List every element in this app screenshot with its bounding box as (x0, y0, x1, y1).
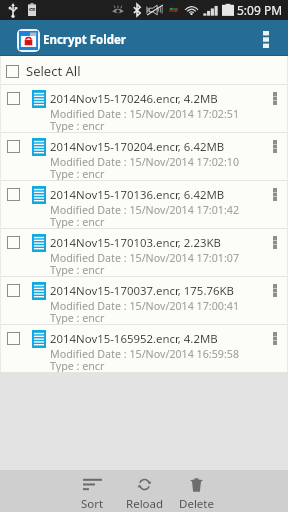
staticText: 2014Nov15-170103.encr, 2.23KB (50, 235, 221, 251)
staticText: 2014Nov15-170246.encr, 4.2MB (50, 91, 218, 107)
button[interactable]: Item options (256, 133, 288, 180)
staticText: Reload (126, 496, 164, 512)
staticText: Type : encr (50, 359, 105, 374)
staticText: 2014Nov15-170037.encr, 175.76KB (50, 283, 234, 299)
button[interactable]: 2014Nov15-170103.encr, 2.23KB (0, 229, 288, 276)
button[interactable]: Item options (256, 277, 288, 324)
button[interactable]: 2014Nov15-170037.encr, 175.76KB (0, 277, 288, 324)
staticText: Type : encr (50, 119, 105, 134)
staticText: 2014Nov15-165952.encr, 4.2MB (50, 331, 218, 347)
staticText: Type : encr (50, 167, 105, 182)
staticText: 2014Nov15-170204.encr, 6.42MB (50, 139, 225, 155)
button[interactable]: 2014Nov15-170204.encr, 6.42MB (0, 133, 288, 180)
button[interactable]: Reload (119, 470, 170, 512)
staticText: Modified Date : 15/Nov/2014 17:00:41 (50, 299, 240, 314)
button[interactable]: Item options (256, 325, 288, 372)
staticText: Modified Date : 15/Nov/2014 16:59:58 (50, 347, 240, 362)
button[interactable]: Select All (0, 56, 288, 84)
button[interactable]: Delete (171, 470, 222, 512)
button[interactable]: Item options (256, 85, 288, 132)
staticText: Type : encr (50, 311, 105, 326)
staticText: 2014Nov15-170136.encr, 6.42MB (50, 187, 225, 203)
staticText: Modified Date : 15/Nov/2014 17:02:10 (50, 155, 240, 170)
button[interactable]: Sort (67, 470, 118, 512)
button[interactable]: 2014Nov15-170136.encr, 6.42MB (0, 181, 288, 228)
staticText: 5:09 PM (237, 2, 283, 18)
staticText: Type : encr (50, 263, 105, 278)
staticText: Sort (81, 496, 104, 512)
staticText: Select All (26, 62, 81, 80)
staticText: Encrypt Folder (43, 32, 127, 48)
button[interactable]: Item options (256, 229, 288, 276)
staticText: Modified Date : 15/Nov/2014 17:01:07 (50, 251, 240, 266)
staticText: Delete (179, 496, 214, 512)
button[interactable]: 2014Nov15-170246.encr, 4.2MB (0, 85, 288, 132)
staticText: Modified Date : 15/Nov/2014 17:01:42 (50, 203, 240, 218)
staticText: Type : encr (50, 215, 105, 230)
button[interactable]: More options (254, 20, 288, 56)
button[interactable]: Item options (256, 181, 288, 228)
button[interactable]: 2014Nov15-165952.encr, 4.2MB (0, 325, 288, 372)
staticText: Modified Date : 15/Nov/2014 17:02:51 (50, 107, 240, 122)
